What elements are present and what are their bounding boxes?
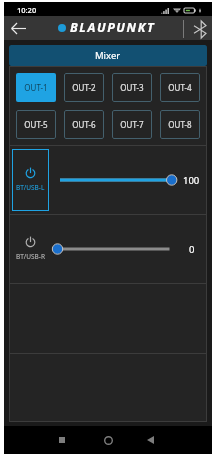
staticText: 0 <box>189 243 195 256</box>
staticText: OUT-3 <box>120 82 144 93</box>
staticText: BLAUPUNKT <box>70 19 156 36</box>
button[interactable]: OUT-6 <box>64 110 104 139</box>
staticText: OUT-5 <box>24 119 48 130</box>
button[interactable]: Recents <box>52 430 72 450</box>
button[interactable]: OUT-3 <box>112 73 152 102</box>
staticText: OUT-2 <box>72 82 96 93</box>
staticText: OUT-1 <box>24 82 48 93</box>
staticText: Mixer <box>95 49 121 62</box>
button[interactable]: BT/USB-R <box>12 218 49 280</box>
button[interactable]: OUT-5 <box>16 110 56 139</box>
button[interactable]: Bluetooth <box>188 17 212 41</box>
staticText: OUT-6 <box>72 119 96 130</box>
staticText: 10:20 <box>17 5 37 15</box>
staticText: OUT-4 <box>168 82 192 93</box>
button[interactable]: OUT-8 <box>160 110 200 139</box>
staticText: OUT-7 <box>120 119 144 130</box>
staticText: 100 <box>183 174 200 187</box>
button[interactable]: OUT-7 <box>112 110 152 139</box>
button[interactable]: Back <box>140 430 160 450</box>
button[interactable]: Mixer <box>9 45 207 66</box>
button[interactable]: OUT-2 <box>64 73 104 102</box>
button[interactable]: OUT-1 <box>16 73 56 102</box>
button[interactable]: OUT-4 <box>160 73 200 102</box>
button[interactable]: Home <box>98 430 118 450</box>
staticText: BT/USB-R <box>16 252 45 261</box>
button[interactable]: BT/USB-L <box>12 149 49 211</box>
button[interactable]: Back <box>6 16 30 40</box>
staticText: BT/USB-L <box>16 183 45 192</box>
staticText: OUT-8 <box>168 119 192 130</box>
